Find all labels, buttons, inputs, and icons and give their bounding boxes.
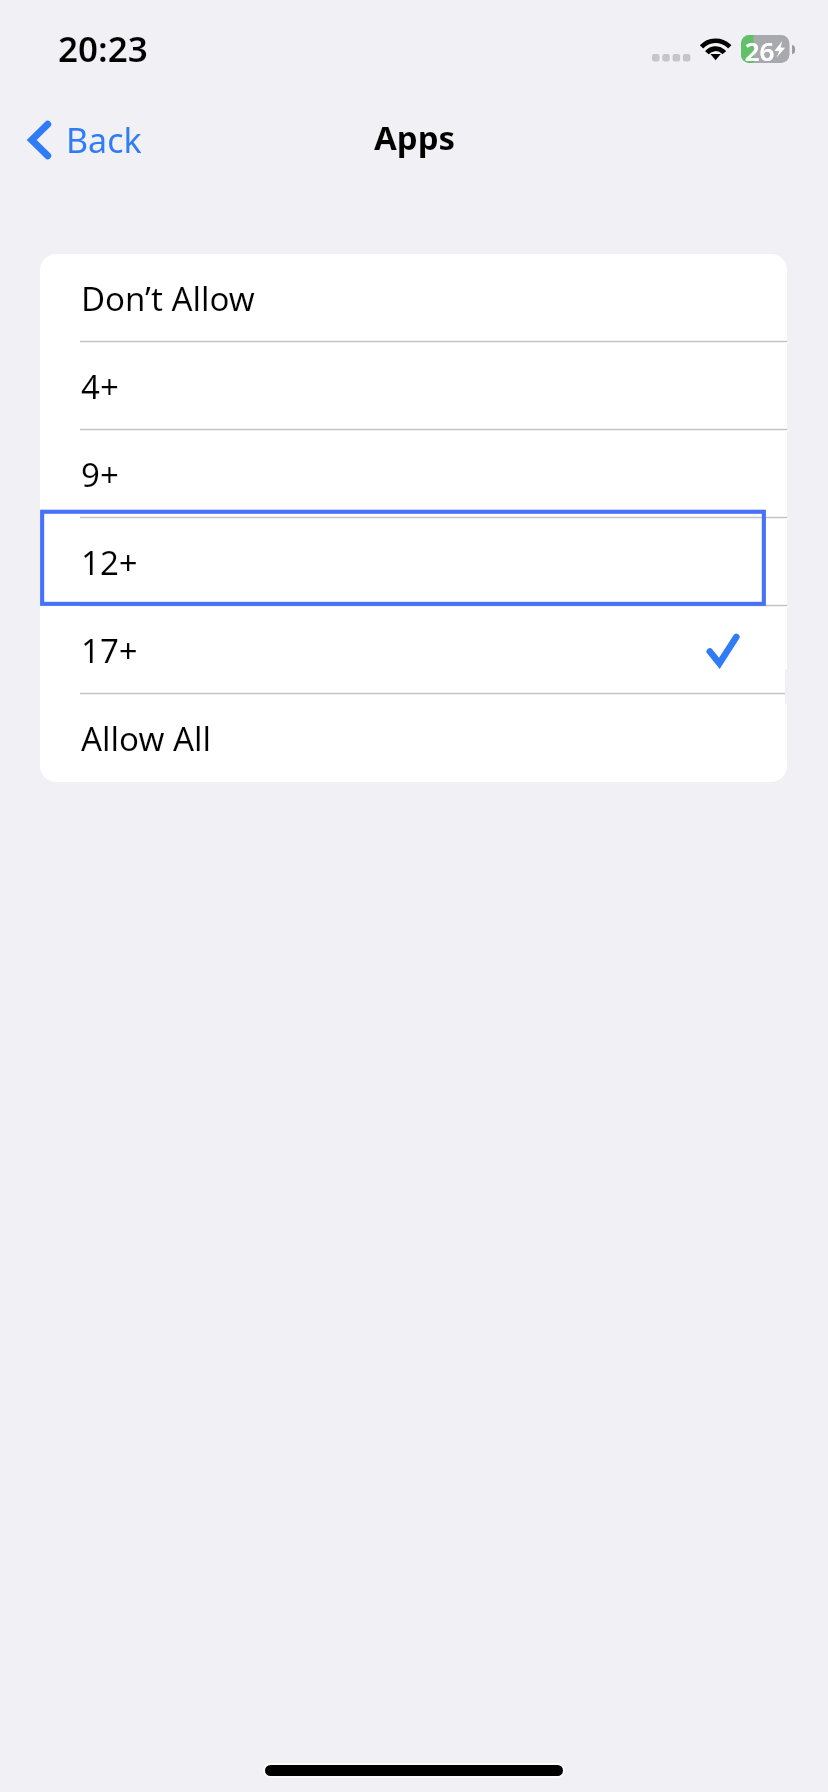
- staticText: 20:23: [58, 25, 148, 73]
- button[interactable]: 4+: [40, 342, 787, 430]
- staticText: 12+: [81, 540, 138, 585]
- button[interactable]: Don’t Allow: [40, 254, 787, 342]
- staticText: Back: [66, 117, 142, 163]
- staticText: 17+: [81, 628, 138, 673]
- button[interactable]: Allow All: [40, 694, 787, 782]
- staticText: Allow All: [81, 716, 212, 761]
- button[interactable]: 12+: [40, 518, 787, 606]
- staticText: Don’t Allow: [81, 276, 255, 321]
- staticText: Apps: [374, 115, 456, 160]
- button[interactable]: 9+: [40, 430, 787, 518]
- button[interactable]: 17+: [40, 606, 787, 694]
- staticText: 4+: [81, 364, 119, 409]
- staticText: 26: [744, 33, 775, 68]
- button[interactable]: Back: [18, 108, 152, 172]
- staticText: 9+: [81, 452, 119, 497]
